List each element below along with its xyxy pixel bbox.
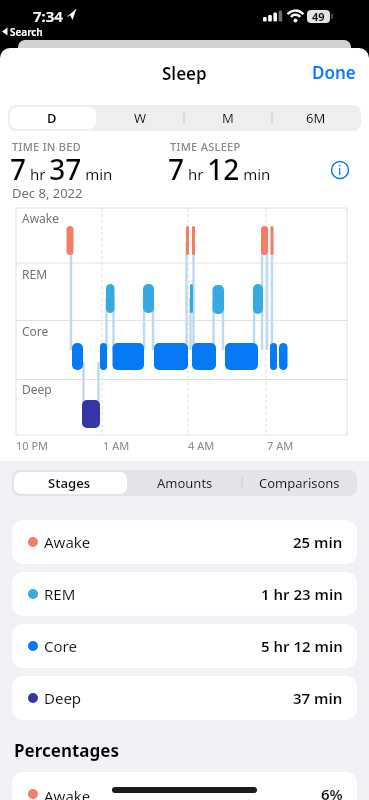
staticText: 10 PM — [16, 438, 49, 453]
staticText: 5 hr 12 min — [261, 636, 343, 656]
staticText: Deep — [22, 381, 52, 397]
staticText: 6% — [321, 784, 343, 800]
button[interactable]: 6M — [272, 105, 360, 131]
button[interactable]: W — [96, 105, 184, 131]
staticText: Awake — [44, 532, 91, 552]
staticText: Amounts — [157, 474, 213, 492]
staticText: 37 min — [293, 688, 343, 708]
button[interactable]: Core — [12, 624, 357, 668]
staticText: 7 AM — [267, 438, 294, 453]
staticText: Dec 8, 2022 — [12, 184, 83, 202]
button[interactable]: Awake — [12, 520, 357, 564]
staticText: Done — [312, 61, 356, 84]
button[interactable]: Awake — [12, 772, 357, 800]
button[interactable]: Deep — [12, 676, 357, 720]
staticText: i — [338, 162, 342, 178]
staticText: 1 AM — [103, 438, 130, 453]
button[interactable]: REM — [12, 572, 357, 616]
staticText: Core — [22, 323, 49, 339]
staticText: 6M — [306, 109, 326, 127]
staticText: TIME IN BED — [12, 139, 82, 154]
staticText: 25 min — [293, 532, 343, 552]
staticText: 4 AM — [188, 438, 215, 453]
button[interactable]: Amounts — [127, 470, 242, 496]
staticText: Core — [44, 636, 77, 656]
staticText: Comparisons — [259, 474, 340, 492]
staticText: 7 hr 12 min — [168, 150, 271, 188]
staticText: Awake — [44, 786, 91, 800]
staticText: Stages — [48, 474, 91, 492]
staticText: W — [134, 109, 147, 127]
staticText: 7:34 — [33, 6, 63, 26]
button[interactable]: Done — [308, 58, 360, 86]
button[interactable]: M — [184, 105, 272, 131]
staticText: REM — [44, 584, 76, 604]
staticText: 49 — [312, 9, 325, 24]
staticText: Deep — [44, 688, 82, 708]
staticText: 7 hr 37 min — [10, 150, 113, 188]
staticText: Awake — [22, 210, 60, 226]
staticText: M — [222, 109, 234, 127]
staticText: Percentages — [14, 739, 119, 762]
staticText: Sleep — [162, 62, 207, 84]
staticText: D — [47, 109, 57, 127]
button[interactable]: i — [330, 160, 350, 180]
button[interactable]: Comparisons — [242, 470, 357, 496]
staticText: Search — [10, 25, 43, 39]
staticText: REM — [22, 266, 48, 282]
staticText: 1 hr 23 min — [261, 584, 343, 604]
staticText: TIME ASLEEP — [170, 139, 241, 154]
